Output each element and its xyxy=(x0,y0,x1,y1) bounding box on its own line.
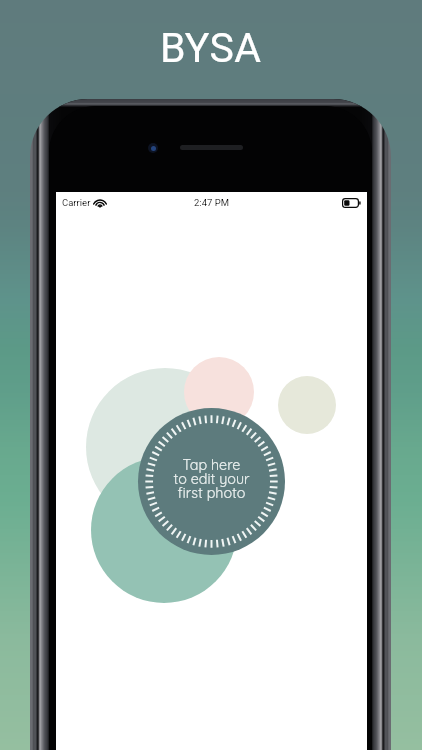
button[interactable]: Tap here to edit your first photo xyxy=(155,456,268,508)
staticText: BYSA xyxy=(160,24,262,72)
staticText: 2:47 PM xyxy=(194,197,229,208)
staticText: Tap here to edit your first photo xyxy=(155,456,268,502)
staticText: Carrier xyxy=(62,197,91,208)
